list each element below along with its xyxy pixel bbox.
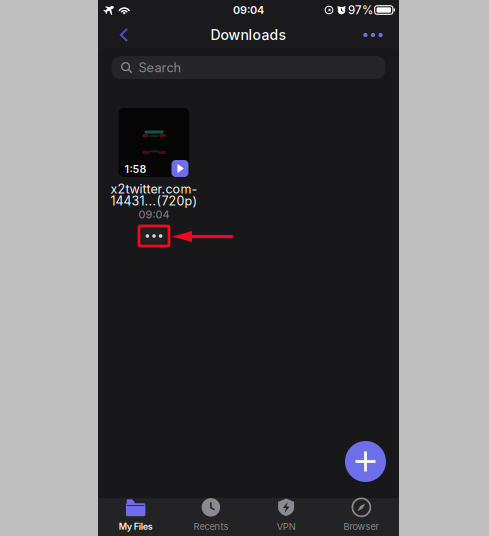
staticText: VPN [277, 521, 296, 532]
staticText: 1:58 [124, 162, 146, 175]
button[interactable]: My Files [98, 498, 173, 536]
button[interactable]: More options [356, 20, 390, 50]
button[interactable]: Add download [345, 441, 386, 482]
staticText: 09:04 [138, 208, 169, 221]
staticText: x2twitter.com- [110, 181, 197, 197]
staticText: 09:04 [233, 3, 264, 17]
button[interactable]: Browser [324, 498, 399, 536]
button[interactable]: 1:58 [118, 108, 189, 177]
button[interactable]: Search [111, 56, 385, 79]
button[interactable]: VPN [248, 498, 324, 536]
staticText: 14431...(720p) [110, 193, 197, 209]
button[interactable]: Recents [173, 498, 248, 536]
button[interactable]: Back [107, 20, 141, 50]
staticText: My Files [119, 521, 153, 532]
staticText: Recents [193, 521, 228, 532]
staticText: Downloads [210, 26, 286, 43]
staticText: Search [138, 60, 181, 75]
staticText: 97% [348, 3, 373, 17]
button[interactable]: File actions [139, 226, 169, 246]
staticText: Browser [343, 521, 379, 532]
